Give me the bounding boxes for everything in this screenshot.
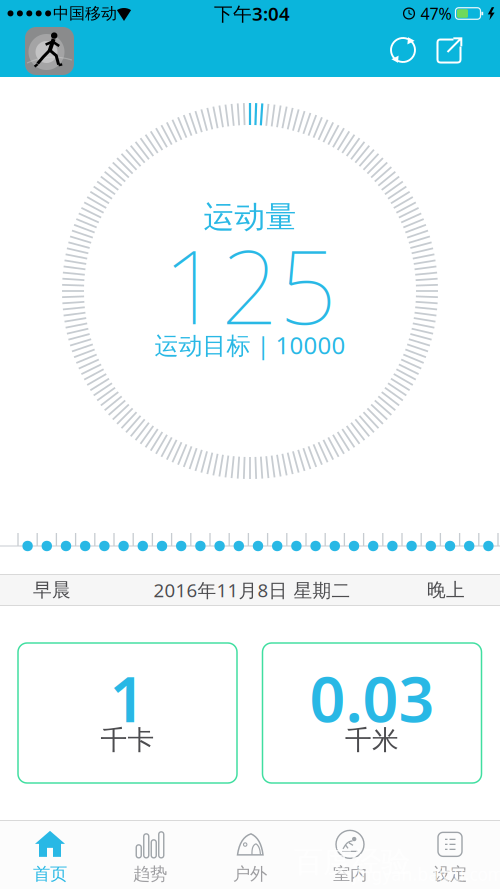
staticText: 户外 (233, 863, 267, 885)
staticText: 运动量 (203, 198, 296, 236)
staticText: 运动目标 | 10000 (154, 329, 345, 361)
staticText: 室内 (333, 863, 367, 885)
button[interactable]: 趋势 (100, 823, 200, 887)
staticText: 设定 (433, 863, 467, 885)
button[interactable]: 0.03 (262, 643, 481, 783)
staticText: 百度经验 (294, 844, 410, 880)
button[interactable] (25, 27, 74, 75)
staticText: 0.03 (309, 656, 434, 740)
staticText: 下午3:04 (214, 1, 290, 26)
button[interactable]: 设定 (400, 823, 500, 887)
staticText: 晚上 (427, 578, 465, 601)
staticText: 47% (420, 3, 451, 24)
staticText: 千米 (345, 724, 399, 756)
staticText: 2016年11月8日 星期二 (153, 578, 350, 602)
button[interactable]: 户外 (200, 823, 300, 887)
staticText: 千卡 (100, 724, 154, 756)
staticText: 中国移动 (53, 4, 117, 23)
staticText: 125 (163, 218, 337, 352)
button[interactable]: 1 (18, 643, 237, 783)
staticText: 趋势 (133, 863, 167, 885)
staticText: jingyan.baidu.com (352, 862, 500, 885)
button[interactable] (436, 37, 462, 63)
button[interactable]: 首页 (0, 823, 100, 887)
staticText: 早晨 (33, 578, 71, 601)
staticText: 首页 (33, 863, 67, 885)
staticText: 1 (109, 656, 145, 740)
button[interactable]: 室内 (300, 823, 400, 887)
button[interactable] (390, 37, 416, 63)
